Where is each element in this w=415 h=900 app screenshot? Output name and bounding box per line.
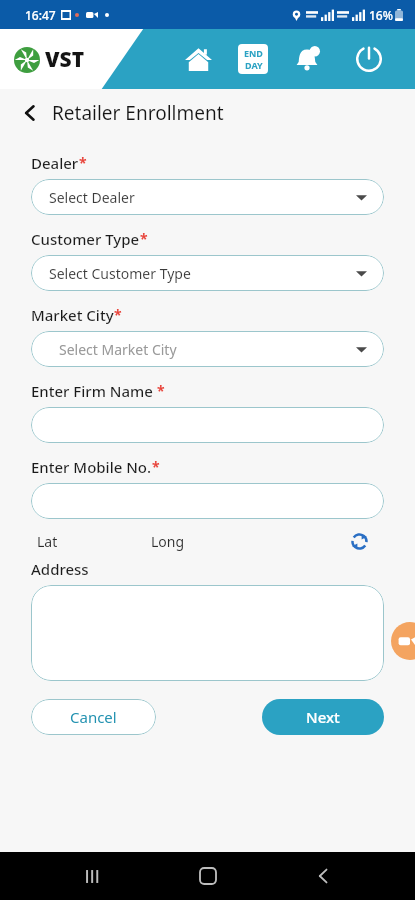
button[interactable]: Logout xyxy=(347,37,391,81)
staticText: Select Market City xyxy=(59,340,177,359)
staticText: Select Dealer xyxy=(49,188,135,207)
staticText: Address xyxy=(31,559,89,579)
staticText: * xyxy=(157,381,165,400)
button[interactable]: Next xyxy=(262,699,384,735)
staticText: DAY xyxy=(245,59,263,71)
staticText: * xyxy=(140,229,148,248)
button[interactable] xyxy=(31,407,384,443)
button[interactable]: Home xyxy=(184,852,232,900)
button[interactable]: Cancel xyxy=(31,699,156,735)
button[interactable]: Video call xyxy=(391,622,415,660)
staticText: Dealer xyxy=(31,153,79,173)
button[interactable]: Select Market City xyxy=(31,331,384,367)
staticText: VST xyxy=(45,45,85,74)
button[interactable]: VST logo xyxy=(14,45,85,74)
button[interactable]: Select Dealer xyxy=(31,179,384,215)
button[interactable]: Select Customer Type xyxy=(31,255,384,291)
staticText: Customer Type xyxy=(31,229,140,249)
staticText: Enter Firm Name xyxy=(31,381,153,401)
staticText: Lat xyxy=(37,532,58,551)
staticText: END xyxy=(244,47,263,59)
staticText: * xyxy=(152,457,160,476)
button[interactable]: Recent apps xyxy=(68,852,116,900)
staticText: Enter Mobile No. xyxy=(31,457,152,477)
button[interactable]: Notifications xyxy=(285,37,329,81)
button[interactable] xyxy=(31,585,384,681)
staticText: Retailer Enrollment xyxy=(52,100,224,126)
button[interactable]: End Day xyxy=(238,44,268,74)
staticText: Cancel xyxy=(70,707,117,727)
staticText: Long xyxy=(151,532,185,551)
button[interactable]: Retailer Enrollment xyxy=(0,89,415,137)
staticText: Next xyxy=(306,707,340,727)
staticText: Select Customer Type xyxy=(49,264,191,283)
staticText: 16:47 xyxy=(25,7,56,23)
staticText: Market City xyxy=(31,305,114,325)
button[interactable]: Home xyxy=(176,37,220,81)
button[interactable]: Back xyxy=(299,852,347,900)
staticText: * xyxy=(79,153,87,172)
button[interactable] xyxy=(31,483,384,519)
staticText: * xyxy=(114,305,122,324)
button[interactable]: Refresh location xyxy=(346,529,372,553)
staticText: 16% xyxy=(369,7,393,23)
